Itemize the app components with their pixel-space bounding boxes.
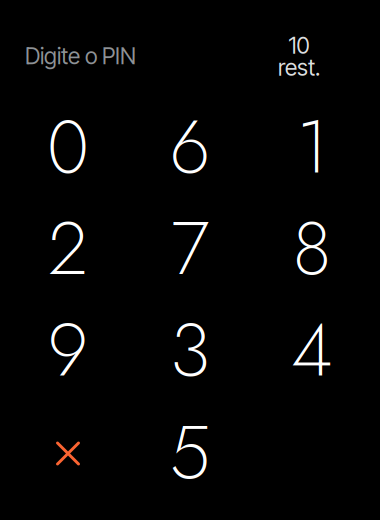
staticText: 8 — [292, 195, 331, 301]
staticText: 2 — [48, 195, 88, 301]
button[interactable]: 3 — [134, 302, 246, 398]
button[interactable]: 1 — [256, 99, 368, 195]
staticText: rest. — [278, 54, 320, 81]
staticText: 0 — [47, 94, 89, 200]
staticText: 4 — [291, 297, 333, 403]
button[interactable]: 4 — [256, 302, 368, 398]
staticText: 9 — [47, 297, 88, 403]
staticText: 7 — [171, 195, 209, 301]
button[interactable]: 0 — [12, 99, 124, 195]
button[interactable]: Apagar — [12, 405, 124, 501]
button[interactable]: 6 — [134, 99, 246, 195]
staticText: Digite o PIN — [25, 42, 136, 70]
button[interactable]: 2 — [12, 200, 124, 296]
button[interactable]: 5 — [134, 404, 246, 500]
button[interactable]: 8 — [256, 200, 368, 296]
staticText: 3 — [170, 297, 210, 403]
staticText: 5 — [169, 399, 210, 505]
button[interactable]: 7 — [134, 200, 246, 296]
staticText: 1 — [296, 94, 327, 200]
staticText: 10 — [288, 32, 309, 59]
staticText: 6 — [169, 94, 210, 200]
button[interactable]: 9 — [12, 302, 124, 398]
